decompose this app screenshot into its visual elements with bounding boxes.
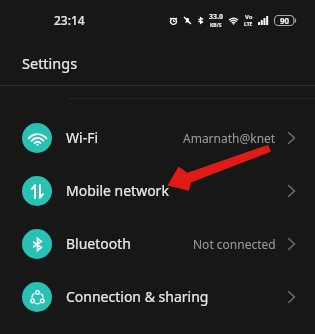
- other: Bluetooth: [22, 229, 52, 259]
- staticText: Mobile network: [66, 181, 169, 200]
- button[interactable]: Wi-Fi: [0, 111, 315, 164]
- staticText: 23:14: [54, 12, 85, 28]
- staticText: Not connected: [193, 236, 276, 252]
- button[interactable]: Bluetooth: [0, 217, 315, 270]
- other: Wi-Fi: [22, 123, 52, 153]
- staticText: Connection & sharing: [66, 287, 209, 306]
- staticText: Vo: [245, 13, 253, 21]
- staticText: Amarnath@knet: [183, 130, 276, 146]
- staticText: 90: [280, 15, 290, 26]
- staticText: 33.0: [209, 12, 223, 22]
- staticText: KB/S: [210, 22, 222, 29]
- other: Connection and sharing: [22, 282, 52, 312]
- button[interactable]: Mobile network: [0, 164, 315, 217]
- staticText: Bluetooth: [66, 234, 131, 253]
- other: Mobile network: [22, 176, 52, 206]
- staticText: Wi-Fi: [66, 128, 99, 147]
- staticText: LTE: [244, 21, 253, 28]
- button[interactable]: Connection and sharing: [0, 270, 315, 323]
- staticText: Settings: [22, 53, 78, 73]
